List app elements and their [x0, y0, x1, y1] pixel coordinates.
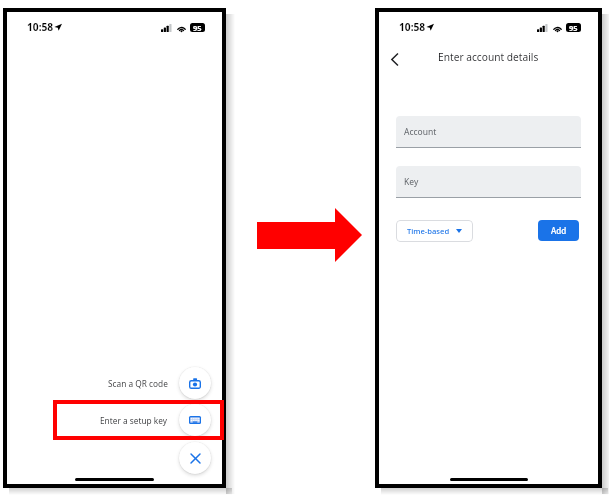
staticText: Add: [551, 225, 567, 236]
staticText: Enter account details: [438, 50, 539, 64]
button[interactable]: Back: [383, 48, 405, 70]
button[interactable]: Time-based: [396, 220, 473, 242]
staticText: Key: [404, 176, 419, 188]
button[interactable]: Scan a QR code: [108, 367, 222, 399]
staticText: Account: [404, 126, 437, 138]
staticText: Enter a setup key: [100, 415, 168, 426]
button[interactable]: Close: [179, 442, 211, 474]
staticText: 10:58: [27, 20, 54, 34]
button[interactable]: Account: [396, 116, 581, 147]
staticText: 95: [569, 23, 578, 32]
button[interactable]: Enter a setup key: [100, 404, 222, 436]
staticText: 95: [193, 23, 202, 32]
button[interactable]: Key: [396, 166, 581, 197]
staticText: Scan a QR code: [108, 378, 168, 389]
button[interactable]: Add: [538, 220, 579, 241]
staticText: 10:58: [399, 20, 426, 34]
staticText: Time-based: [407, 226, 450, 236]
